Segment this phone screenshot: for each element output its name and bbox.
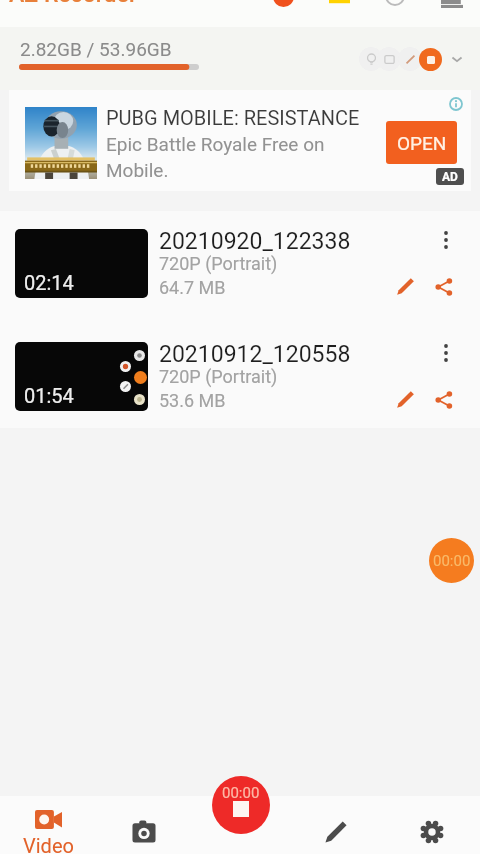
staticText: 720P (Portrait) [159, 366, 278, 387]
staticText: 20210912_120558 [159, 341, 351, 368]
button[interactable]: Menu [439, 0, 465, 10]
button[interactable]: Share [429, 272, 459, 302]
button[interactable]: PUBG MOBILE: RESISTANCE [9, 90, 471, 191]
staticText: 53.6 MB [159, 390, 226, 411]
staticText: 02:14 [24, 271, 74, 294]
button[interactable]: Quick action [398, 47, 422, 71]
button[interactable]: Record [271, 0, 295, 8]
button[interactable]: Stop recording [212, 776, 270, 834]
staticText: Video [23, 834, 74, 854]
button[interactable]: Help [383, 0, 407, 8]
staticText: 2.82GB / 53.96GB [20, 38, 172, 60]
button[interactable]: Edit [390, 384, 420, 414]
staticText: PUBG MOBILE: RESISTANCE [106, 106, 360, 129]
button[interactable]: More options [428, 335, 464, 371]
button[interactable]: Camera [96, 796, 192, 854]
staticText: 20210920_122338 [159, 228, 351, 255]
button[interactable]: Floating recorder [429, 538, 474, 583]
button[interactable]: Edit [390, 271, 420, 301]
staticText: AD [442, 170, 458, 184]
button[interactable]: Expand [446, 48, 468, 70]
button[interactable]: Video [0, 796, 96, 854]
button[interactable]: 02:14 [0, 211, 480, 321]
staticText: 00:00 [433, 552, 471, 570]
button[interactable]: Edit [288, 796, 384, 854]
button[interactable]: 01:54 [0, 324, 480, 428]
button[interactable]: Quick action [359, 47, 383, 71]
button[interactable]: Share [429, 385, 459, 415]
staticText: 64.7 MB [159, 277, 226, 298]
staticText: OPEN [397, 132, 447, 154]
button[interactable]: Quick action [377, 47, 401, 71]
staticText: 00:00 [222, 784, 260, 802]
button[interactable]: Ad info [449, 97, 463, 111]
button[interactable]: Recording mode [419, 48, 442, 71]
button[interactable]: Gallery [327, 0, 351, 8]
staticText: 01:54 [24, 384, 74, 407]
button[interactable]: More options [428, 222, 464, 258]
button[interactable]: Settings [384, 796, 480, 854]
staticText: AZ Recorder [9, 0, 138, 8]
button[interactable]: OPEN [386, 121, 457, 164]
staticText: 720P (Portrait) [159, 253, 278, 274]
staticText: Epic Battle Royale Free on Mobile. [106, 133, 325, 181]
